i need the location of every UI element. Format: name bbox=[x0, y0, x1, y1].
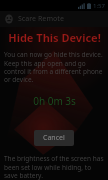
button[interactable]: Scare Remote app icon bbox=[0, 11, 108, 27]
staticText: You can now go hide this device. Keep th… bbox=[4, 50, 104, 84]
staticText: Hide This Device! bbox=[8, 30, 101, 45]
staticText: The brightness of the screen has been se… bbox=[4, 154, 104, 180]
staticText: Scare Remote bbox=[18, 14, 64, 24]
staticText: 1:57 bbox=[93, 2, 105, 10]
staticText: Cancel bbox=[43, 133, 65, 143]
other: Scare Remote app icon bbox=[4, 14, 14, 24]
staticText: 0h 0m 3s bbox=[33, 94, 76, 108]
button[interactable]: Cancel bbox=[34, 130, 74, 146]
